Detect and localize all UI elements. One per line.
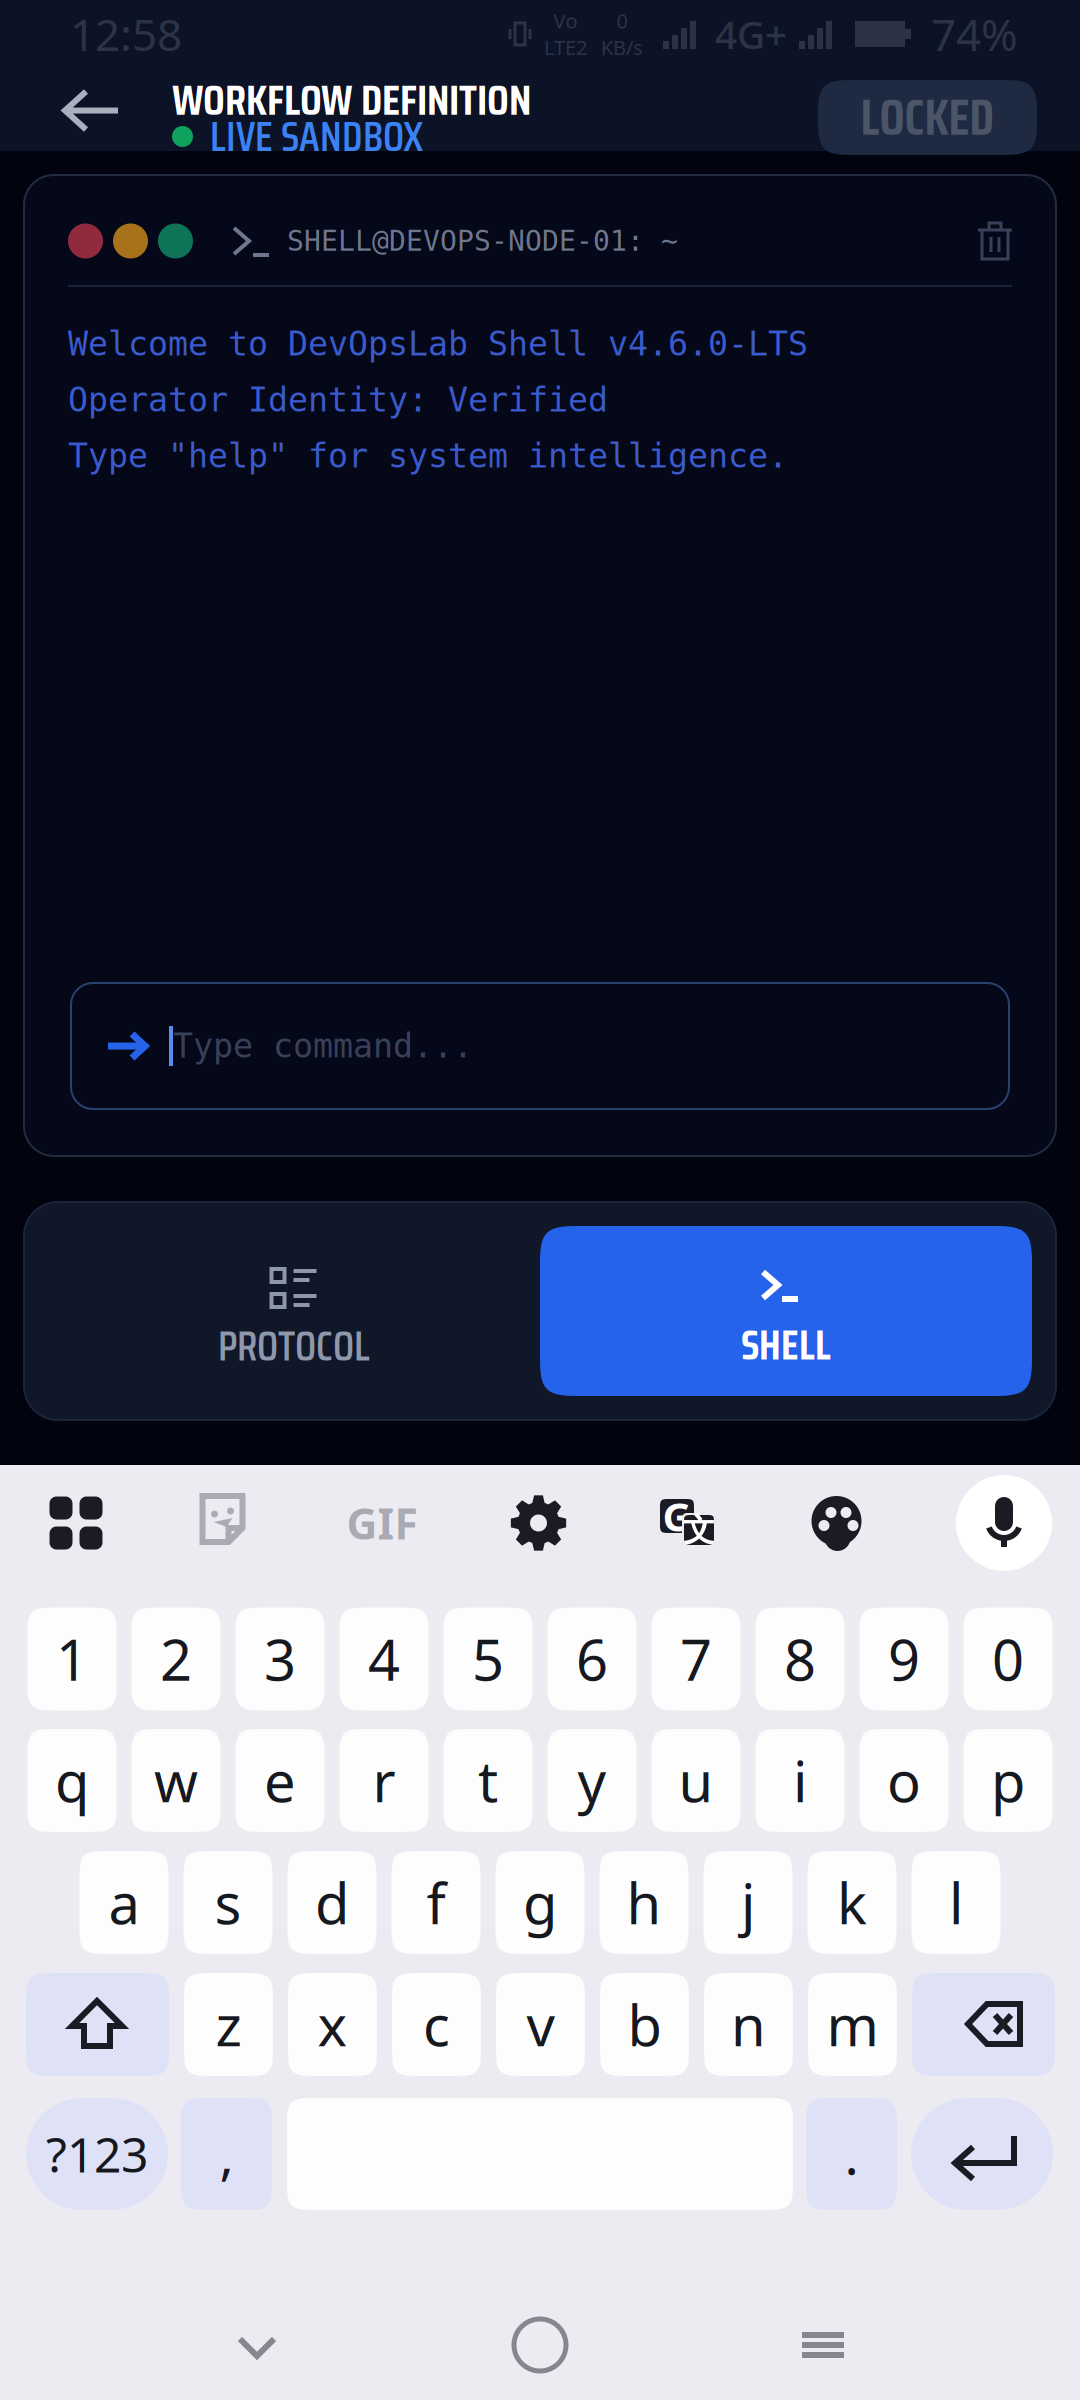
- button[interactable]: 8: [755, 1607, 844, 1710]
- staticText: 1: [56, 1622, 88, 1696]
- button[interactable]: x: [288, 1973, 377, 2076]
- button[interactable]: 9: [859, 1607, 948, 1710]
- staticText: 9: [888, 1622, 920, 1696]
- staticText: 4G+: [715, 8, 787, 60]
- staticText: s: [214, 1865, 241, 1940]
- staticText: b: [627, 1987, 661, 2062]
- staticText: 2: [160, 1622, 192, 1696]
- button[interactable]: a: [79, 1851, 168, 1954]
- button[interactable]: v: [496, 1973, 585, 2076]
- button[interactable]: Settings: [507, 1492, 569, 1554]
- button[interactable]: ,: [181, 2098, 272, 2210]
- staticText: m: [826, 1987, 878, 2062]
- staticText: 4: [368, 1622, 400, 1696]
- button[interactable]: q: [27, 1729, 116, 1832]
- button[interactable]: 3: [235, 1607, 324, 1710]
- button[interactable]: 2: [131, 1607, 220, 1710]
- staticText: 7: [680, 1622, 712, 1696]
- staticText: n: [731, 1987, 766, 2062]
- button[interactable]: d: [287, 1851, 376, 1954]
- button[interactable]: c: [392, 1973, 481, 2076]
- button[interactable]: Home: [514, 2319, 566, 2371]
- staticText: ?123: [46, 2122, 148, 2186]
- button[interactable]: Voice input: [956, 1475, 1052, 1571]
- staticText: c: [423, 1987, 450, 2062]
- button[interactable]: j: [703, 1851, 792, 1954]
- button[interactable]: i: [755, 1729, 844, 1832]
- staticText: 8: [784, 1622, 816, 1696]
- button[interactable]: l: [911, 1851, 1000, 1954]
- button[interactable]: Translate: [657, 1492, 719, 1554]
- staticText: k: [837, 1865, 867, 1940]
- staticText: G: [662, 1489, 691, 1542]
- button[interactable]: Clear terminal: [976, 218, 1014, 264]
- button[interactable]: Shift: [26, 1973, 169, 2076]
- staticText: Operator Identity: Verified: [68, 381, 608, 419]
- button[interactable]: Back: [0, 87, 172, 133]
- button[interactable]: y: [547, 1729, 636, 1832]
- button[interactable]: GIF: [344, 1492, 420, 1554]
- staticText: t: [478, 1743, 498, 1818]
- button[interactable]: ?123: [26, 2098, 168, 2210]
- button[interactable]: SHELL: [540, 1226, 1032, 1396]
- staticText: SHELL: [741, 1312, 831, 1378]
- staticText: f: [426, 1865, 445, 1940]
- button[interactable]: t: [443, 1729, 532, 1832]
- button[interactable]: r: [339, 1729, 428, 1832]
- staticText: l: [949, 1865, 963, 1940]
- staticText: Vo: [553, 7, 577, 34]
- staticText: j: [741, 1865, 755, 1940]
- button[interactable]: PROTOCOL: [48, 1226, 540, 1396]
- staticText: i: [793, 1743, 807, 1818]
- button[interactable]: Stickers: [194, 1492, 256, 1554]
- button[interactable]: 1: [27, 1607, 116, 1710]
- staticText: z: [215, 1987, 241, 2062]
- button[interactable]: Hide keyboard: [228, 2316, 286, 2374]
- staticText: 74%: [931, 5, 1018, 63]
- button[interactable]: z: [184, 1973, 273, 2076]
- staticText: 6: [576, 1622, 608, 1696]
- button[interactable]: s: [183, 1851, 272, 1954]
- staticText: h: [626, 1865, 661, 1940]
- button[interactable]: 6: [547, 1607, 636, 1710]
- button[interactable]: u: [651, 1729, 740, 1832]
- button[interactable]: o: [859, 1729, 948, 1832]
- staticText: p: [991, 1743, 1025, 1818]
- button[interactable]: b: [600, 1973, 689, 2076]
- staticText: SHELL@DEVOPS-NODE-01: ~: [287, 225, 678, 257]
- button[interactable]: f: [391, 1851, 480, 1954]
- button[interactable]: k: [807, 1851, 896, 1954]
- staticText: u: [678, 1743, 713, 1818]
- staticText: e: [264, 1743, 296, 1818]
- staticText: LTE2: [544, 34, 587, 61]
- staticText: y: [577, 1743, 606, 1818]
- button[interactable]: LOCKED: [818, 80, 1037, 155]
- button[interactable]: m: [808, 1973, 897, 2076]
- button[interactable]: 0: [963, 1607, 1052, 1710]
- staticText: Type "help" for system intelligence.: [68, 437, 788, 475]
- button[interactable]: Themes: [806, 1492, 868, 1554]
- button[interactable]: Keyboard modes: [45, 1492, 107, 1554]
- staticText: 3: [264, 1622, 296, 1696]
- staticText: o: [887, 1743, 921, 1818]
- button[interactable]: g: [495, 1851, 584, 1954]
- button[interactable]: Backspace: [912, 1973, 1055, 2076]
- staticText: WORKFLOW DEFINITION: [172, 66, 531, 134]
- button[interactable]: .: [806, 2098, 897, 2210]
- staticText: Welcome to DevOpsLab Shell v4.6.0-LTS: [68, 325, 808, 363]
- button[interactable]: Recents: [794, 2316, 852, 2374]
- button[interactable]: 4: [339, 1607, 428, 1710]
- button[interactable]: n: [704, 1973, 793, 2076]
- button[interactable]: p: [963, 1729, 1052, 1832]
- staticText: r: [372, 1743, 395, 1818]
- button[interactable]: Enter: [911, 2098, 1053, 2210]
- button[interactable]: 7: [651, 1607, 740, 1710]
- staticText: Type command...: [173, 1027, 473, 1065]
- button[interactable]: 5: [443, 1607, 532, 1710]
- staticText: x: [317, 1987, 347, 2062]
- button[interactable]: w: [131, 1729, 220, 1832]
- button[interactable]: e: [235, 1729, 324, 1832]
- button[interactable]: h: [599, 1851, 688, 1954]
- staticText: ,: [219, 2119, 233, 2189]
